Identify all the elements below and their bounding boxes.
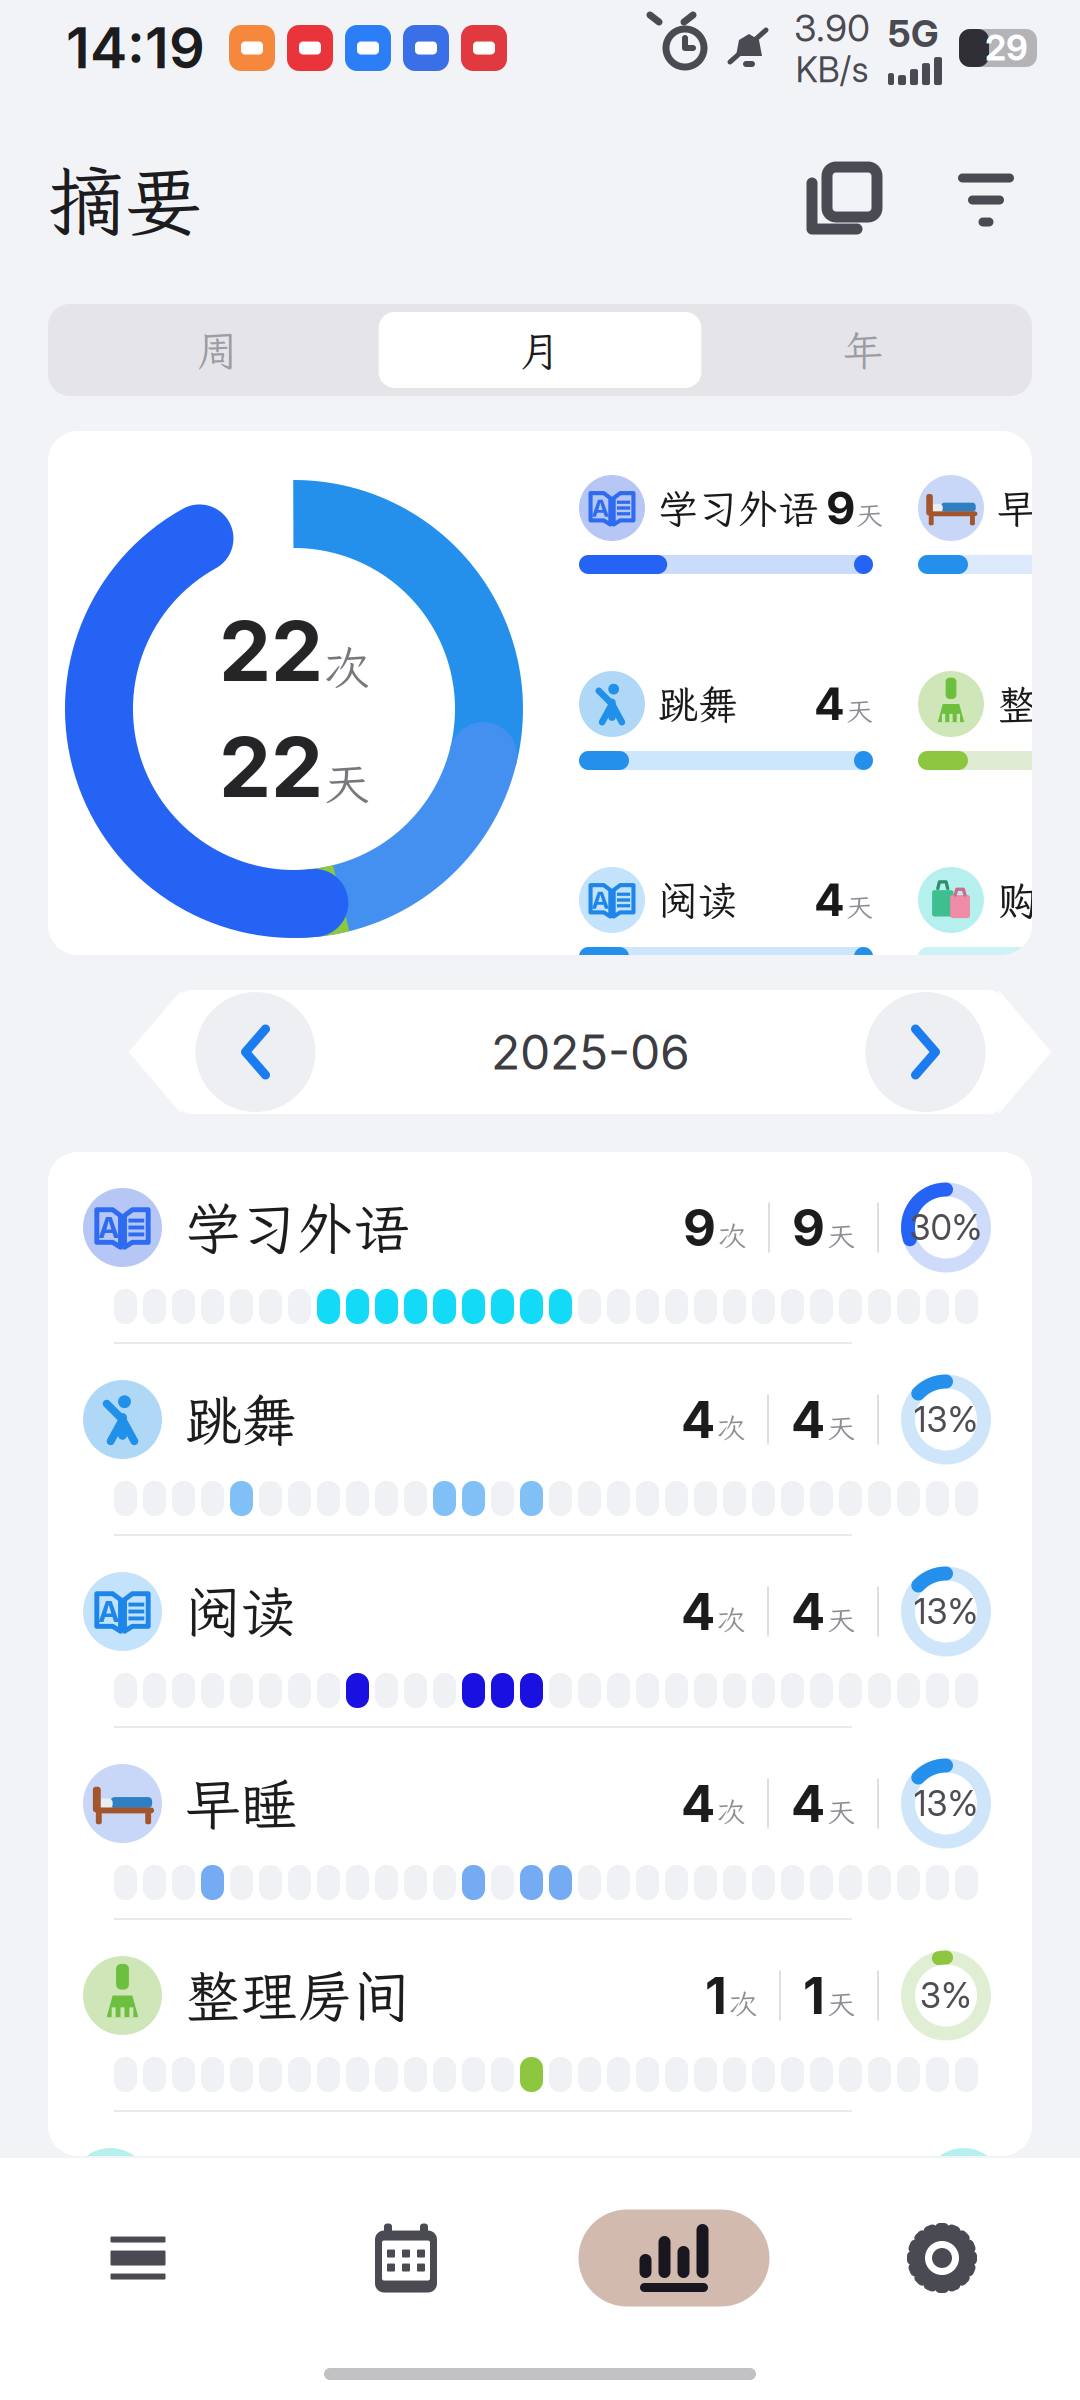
staticText: 天 <box>827 1217 855 1254</box>
button[interactable]: Compare habits <box>796 154 888 246</box>
staticText: 4 <box>791 1773 825 1834</box>
staticText: 天 <box>324 753 369 813</box>
staticText: A <box>98 1210 119 1245</box>
staticText: 22 <box>219 717 323 817</box>
staticText: KB/s <box>795 49 868 90</box>
staticText: 22 <box>219 601 323 701</box>
staticText: 天 <box>827 1793 855 1830</box>
staticText: 早睡 <box>997 482 1077 534</box>
staticText: 次 <box>717 1601 745 1638</box>
staticText: 次 <box>729 1985 757 2022</box>
staticText: 天 <box>827 1601 855 1638</box>
staticText: 30% <box>909 1206 982 1248</box>
staticText: 2025-06 <box>491 1023 690 1081</box>
staticText: 摘要 <box>48 149 202 251</box>
staticText: 4 <box>791 1581 825 1642</box>
staticText: 4 <box>814 873 845 927</box>
staticText: A <box>591 493 609 523</box>
staticText: A <box>98 1594 119 1629</box>
staticText: 阅读 <box>658 874 738 926</box>
button[interactable]: Previous month <box>195 992 315 1112</box>
staticText: 年 <box>842 323 883 377</box>
staticText: 4 <box>681 1389 715 1450</box>
staticText: 5G <box>888 11 939 56</box>
staticText: 3% <box>920 1974 972 2016</box>
button[interactable]: Calendar <box>272 2188 540 2328</box>
staticText: A <box>591 885 609 915</box>
staticText: 29 <box>985 27 1028 69</box>
staticText: 整理房间 <box>997 678 1080 730</box>
button[interactable]: Filter <box>940 154 1032 246</box>
staticText: 1 <box>803 1965 825 2026</box>
staticText: 1 <box>705 1965 727 2026</box>
staticText: 购物 <box>997 874 1077 926</box>
staticText: 学习外语 <box>658 482 818 534</box>
staticText: 4 <box>681 1773 715 1834</box>
staticText: 9 <box>683 1197 716 1258</box>
staticText: 月 <box>519 323 560 377</box>
staticText: 天 <box>856 497 883 532</box>
staticText: 整理房间 <box>185 1959 409 2032</box>
staticText: 天 <box>846 693 873 728</box>
staticText: 4 <box>681 1581 715 1642</box>
staticText: 跳舞 <box>185 1383 297 1456</box>
staticText: 3.90 <box>794 5 870 51</box>
button[interactable]: 月 <box>379 312 701 388</box>
staticText: 学习外语 <box>185 1191 409 1264</box>
staticText: 14:19 <box>66 14 205 82</box>
button[interactable]: Next month <box>865 992 985 1112</box>
button[interactable]: 年 <box>701 312 1024 388</box>
staticText: 周 <box>197 323 238 377</box>
staticText: 早睡 <box>185 1767 297 1840</box>
staticText: 次 <box>717 1793 745 1830</box>
staticText: 4 <box>814 677 845 731</box>
staticText: 4 <box>791 1389 825 1450</box>
staticText: 次 <box>718 1217 746 1254</box>
button[interactable]: Statistics <box>540 2188 808 2328</box>
staticText: 次 <box>324 637 369 697</box>
staticText: 13% <box>913 1782 978 1824</box>
button[interactable]: 周 <box>56 312 379 388</box>
staticText: 次 <box>717 1409 745 1446</box>
staticText: 天 <box>827 1985 855 2022</box>
staticText: 跳舞 <box>658 678 738 730</box>
button[interactable]: Habit list <box>4 2188 272 2328</box>
staticText: 9 <box>826 481 855 535</box>
staticText: 天 <box>846 889 873 924</box>
staticText: 13% <box>913 1590 978 1632</box>
staticText: 9 <box>792 1197 825 1258</box>
button[interactable]: Settings <box>808 2188 1076 2328</box>
staticText: 13% <box>913 1398 978 1440</box>
staticText: 阅读 <box>185 1575 297 1648</box>
staticText: 天 <box>827 1409 855 1446</box>
